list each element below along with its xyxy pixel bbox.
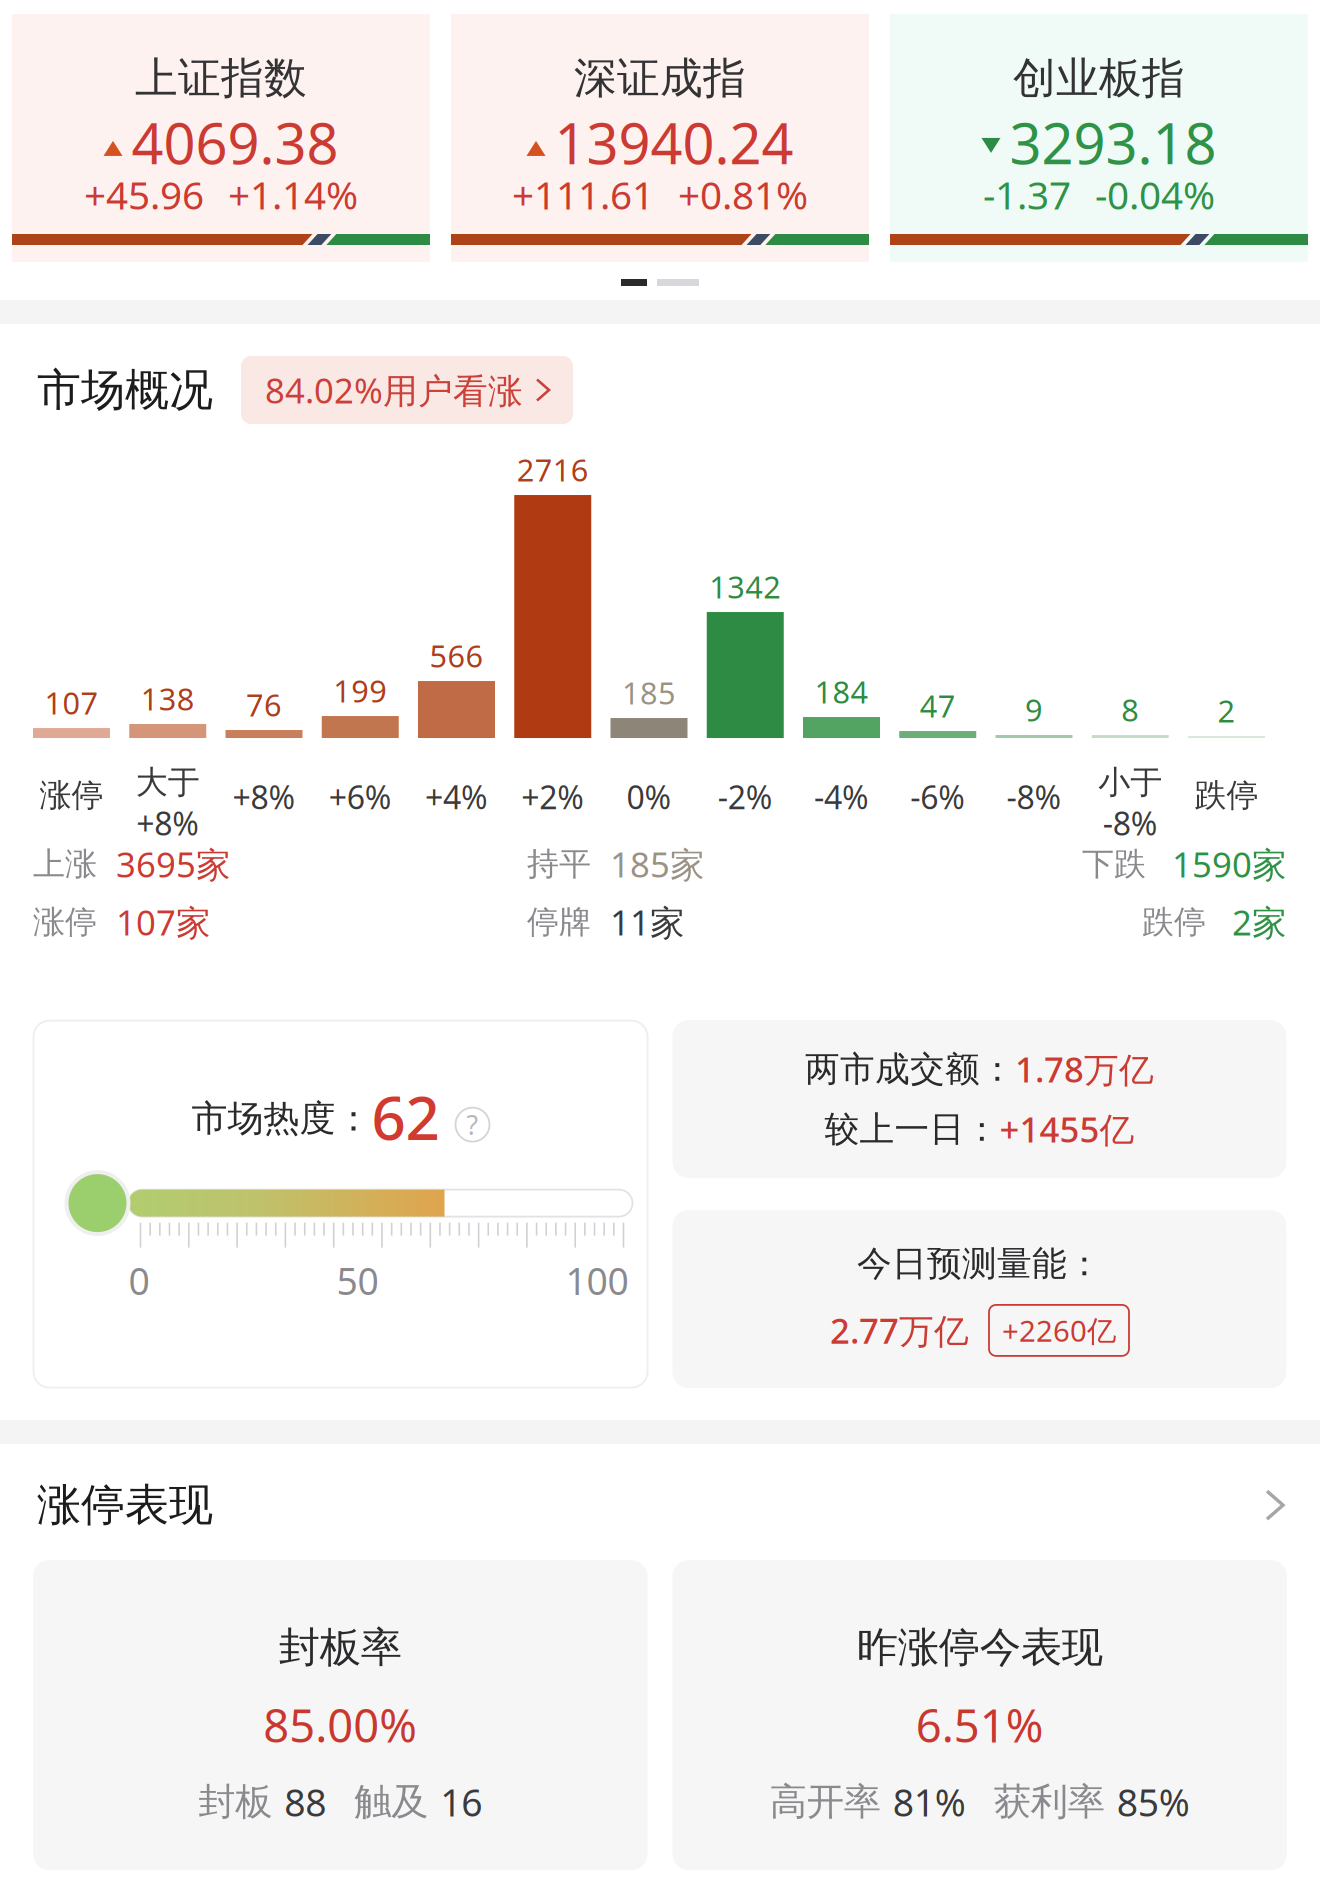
staticText: 88 — [284, 1777, 326, 1827]
button[interactable]: 上证指数 — [12, 14, 430, 262]
staticText: 3293.18 — [1009, 105, 1216, 180]
staticText: -1.37 — [983, 169, 1071, 220]
button[interactable]: 84.02%用户看涨 — [241, 356, 573, 424]
staticText: 4069.38 — [131, 105, 338, 180]
staticText: 涨停 — [39, 776, 103, 815]
staticText: +8% — [232, 776, 295, 818]
staticText: 封板 — [198, 1779, 272, 1825]
staticText: 185家 — [610, 841, 705, 887]
staticText: 13940.24 — [554, 105, 793, 180]
staticText: +6% — [329, 776, 392, 818]
staticText: -2% — [718, 776, 773, 818]
button[interactable]: 封板率 — [33, 1560, 647, 1870]
staticText: 84.02%用户看涨 — [265, 367, 523, 413]
staticText: 107 — [44, 682, 98, 723]
staticText: 2.77万亿 — [830, 1307, 969, 1353]
staticText: 昨涨停今表现 — [857, 1622, 1103, 1673]
staticText: 1342 — [709, 566, 781, 607]
staticText: 566 — [429, 635, 483, 676]
staticText: +1455亿 — [999, 1106, 1134, 1152]
staticText: +1.14% — [228, 169, 358, 220]
staticText: 跌停 — [1194, 776, 1258, 815]
staticText: 今日预测量能： — [857, 1242, 1102, 1285]
staticText: 11家 — [610, 899, 685, 945]
staticText: 深证成指 — [574, 52, 746, 104]
staticText: 大于 — [136, 763, 200, 802]
staticText: 持平 — [527, 844, 591, 884]
button[interactable]: 创业板指 — [890, 14, 1308, 262]
staticText: 1.78万亿 — [1015, 1046, 1154, 1092]
staticText: 涨停表现 — [37, 1478, 213, 1532]
button[interactable]: 涨停表现 — [0, 1444, 1320, 1560]
staticText: -4% — [814, 776, 869, 818]
staticText: 85.00% — [263, 1695, 417, 1755]
staticText: 获利率 — [994, 1779, 1105, 1825]
button[interactable]: 深证成指 — [451, 14, 869, 262]
staticText: 涨停 — [33, 902, 97, 942]
staticText: 81% — [893, 1777, 966, 1827]
staticText: +2% — [521, 776, 584, 818]
staticText: 47 — [920, 685, 956, 726]
staticText: 85% — [1117, 1777, 1190, 1827]
staticText: +111.61 — [512, 169, 654, 220]
staticText: 上证指数 — [135, 52, 307, 104]
staticText: 两市成交额： — [805, 1048, 1015, 1090]
staticText: 2716 — [517, 449, 589, 490]
staticText: 185 — [622, 672, 676, 713]
staticText: 1590家 — [1172, 841, 1287, 887]
staticText: 76 — [246, 684, 282, 725]
staticText: +45.96 — [84, 169, 204, 220]
staticText: 市场热度： — [191, 1096, 371, 1141]
staticText: 6.51% — [916, 1695, 1044, 1755]
staticText: +8% — [136, 802, 199, 844]
staticText: +2260亿 — [1002, 1311, 1116, 1350]
staticText: 100 — [565, 1256, 628, 1305]
staticText: 封板率 — [279, 1622, 402, 1673]
staticText: 市场概况 — [37, 363, 213, 417]
staticText: 50 — [336, 1256, 378, 1305]
staticText: -8% — [1006, 776, 1061, 818]
staticText: 停牌 — [527, 902, 591, 942]
staticText: 8 — [1121, 689, 1139, 730]
staticText: 触及 — [354, 1779, 428, 1825]
staticText: 高开率 — [770, 1779, 881, 1825]
staticText: -0.04% — [1095, 169, 1215, 220]
staticText: +4% — [425, 776, 488, 818]
staticText: 184 — [814, 671, 868, 712]
staticText: 16 — [440, 1777, 482, 1827]
staticText: 107家 — [116, 899, 211, 945]
staticText: 138 — [141, 678, 195, 719]
staticText: 创业板指 — [1013, 52, 1185, 104]
staticText: +0.81% — [678, 169, 808, 220]
staticText: 9 — [1025, 689, 1043, 730]
staticText: 2家 — [1232, 899, 1287, 945]
staticText: 下跌 — [1082, 844, 1146, 884]
staticText: 62 — [371, 1077, 439, 1156]
staticText: 较上一日： — [824, 1108, 999, 1150]
staticText: 2 — [1217, 690, 1235, 731]
staticText: 0% — [626, 776, 671, 818]
staticText: -8% — [1103, 802, 1158, 844]
staticText: 上涨 — [33, 844, 97, 884]
staticText: 小于 — [1098, 763, 1162, 802]
staticText: 0 — [128, 1256, 149, 1305]
staticText: 199 — [333, 670, 387, 711]
staticText: ? — [466, 1107, 478, 1142]
staticText: 3695家 — [116, 841, 231, 887]
staticText: -6% — [910, 776, 965, 818]
staticText: 跌停 — [1142, 902, 1206, 942]
button[interactable]: 昨涨停今表现 — [672, 1560, 1287, 1870]
